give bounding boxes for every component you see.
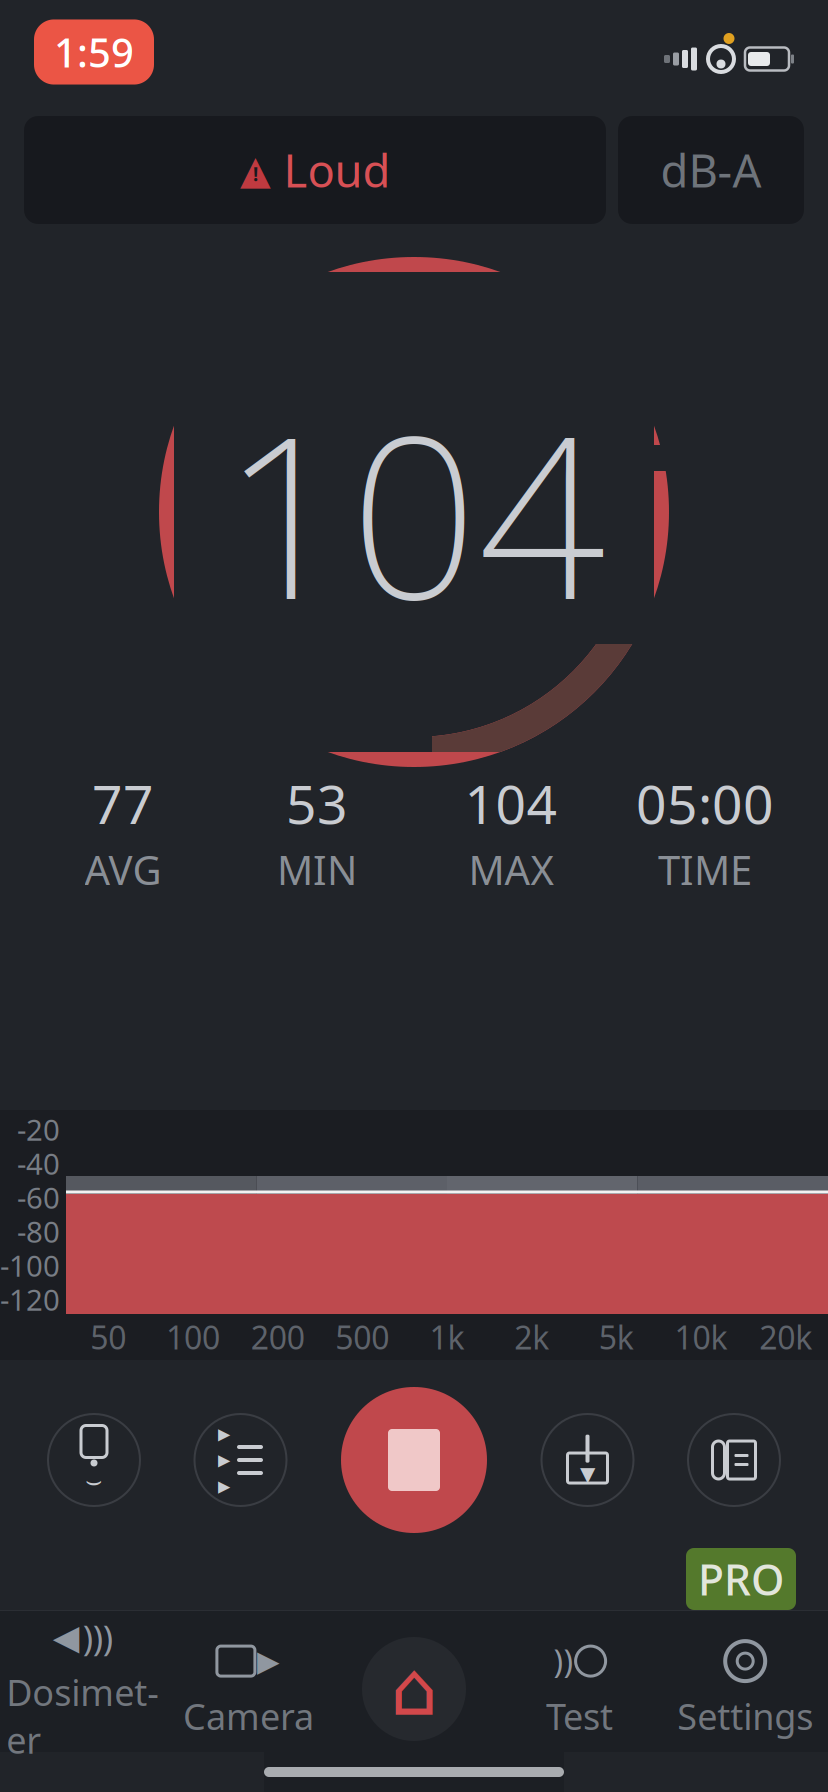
button[interactable]: ◀ [0, 1634, 166, 1744]
staticText: -20 [17, 1110, 60, 1149]
staticText: -80 [17, 1212, 60, 1251]
staticText: PRO [698, 1551, 784, 1607]
staticText: ▶ [218, 1451, 230, 1469]
staticText: dB-A [660, 140, 761, 200]
staticText: ▶ [218, 1477, 230, 1495]
button[interactable]: ▲ [24, 116, 606, 224]
staticText: 100 [166, 1316, 220, 1358]
staticText: 104 [464, 768, 557, 839]
staticText: ▶ [218, 1425, 230, 1443]
button[interactable]: ▶ [166, 1634, 331, 1744]
staticText: 10k [674, 1316, 727, 1358]
staticText: Dosimeter [6, 1668, 159, 1764]
staticText: 500 [335, 1316, 389, 1358]
staticText: 104 [222, 363, 606, 661]
staticText: ▲ [240, 147, 271, 193]
button[interactable]: )) [497, 1634, 662, 1744]
staticText: ! [253, 162, 258, 186]
staticText: 05:00 [636, 768, 774, 839]
staticText: -100 [0, 1246, 60, 1285]
staticText: 77 [92, 768, 154, 839]
staticText: AVG [84, 843, 161, 896]
staticText: Settings [677, 1692, 813, 1740]
staticText: -60 [17, 1178, 60, 1217]
staticText: )) [554, 1640, 574, 1682]
staticText: ▶ [257, 1644, 280, 1678]
button[interactable]: Home [331, 1634, 497, 1744]
button[interactable]: List [192, 1412, 288, 1508]
staticText: ))) [83, 1614, 113, 1660]
button[interactable]: dB-A [618, 116, 804, 224]
button[interactable]: Report [686, 1412, 782, 1508]
staticText: Loud [283, 140, 390, 200]
staticText: 50 [90, 1316, 126, 1358]
staticText: 2k [514, 1316, 549, 1358]
button[interactable]: Settings [662, 1634, 828, 1744]
staticText: -120 [0, 1280, 60, 1319]
staticText: ⌣ [85, 1468, 103, 1494]
staticText: 1k [429, 1316, 464, 1358]
staticText: Test [546, 1692, 613, 1740]
staticText: ▼ [580, 1463, 595, 1485]
button[interactable]: Calibrate [46, 1412, 142, 1508]
staticText: 1:59 [54, 25, 134, 78]
staticText: 200 [251, 1316, 305, 1358]
button[interactable]: Stop recording [339, 1385, 489, 1535]
button[interactable]: PRO [686, 1548, 796, 1610]
staticText: 20k [759, 1316, 812, 1358]
staticText: 53 [286, 768, 348, 839]
staticText: ◀ [53, 1617, 80, 1657]
staticText: -40 [17, 1144, 60, 1183]
staticText: TIME [658, 843, 752, 896]
staticText: MIN [277, 843, 357, 896]
staticText: Camera [183, 1692, 314, 1740]
button[interactable]: Save [539, 1412, 635, 1508]
staticText: ⌂ [390, 1647, 437, 1731]
staticText: MAX [468, 843, 553, 896]
staticText: 5k [599, 1316, 634, 1358]
